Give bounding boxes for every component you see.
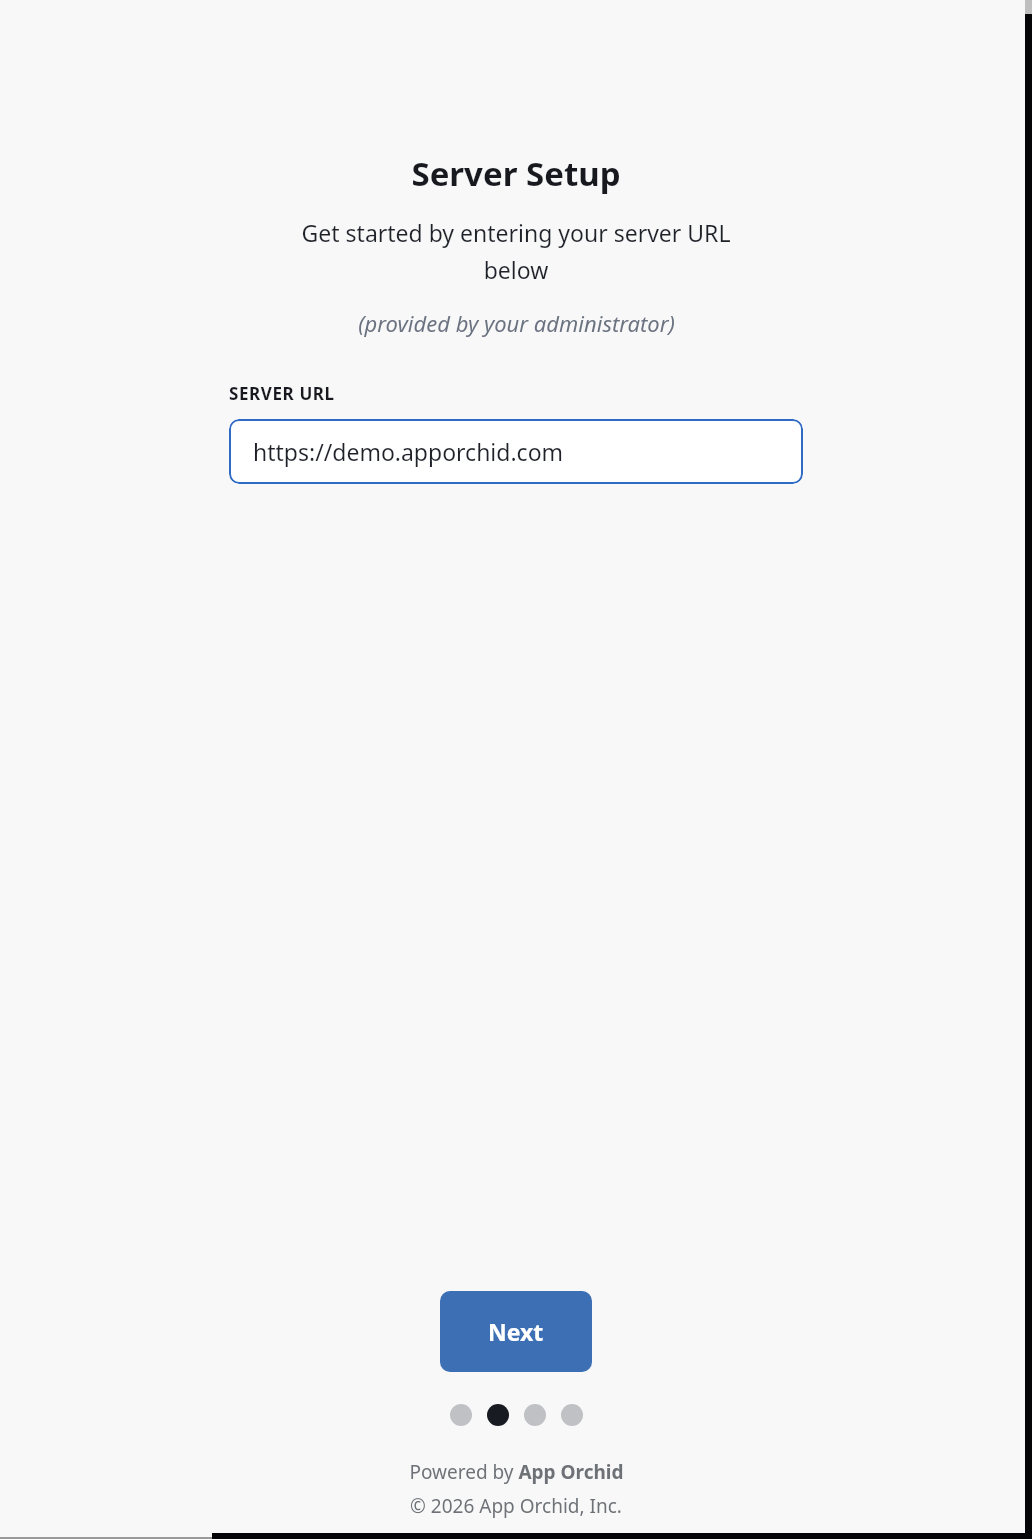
button[interactable]: https://demo.apporchid.com — [229, 419, 803, 484]
button[interactable]: Page 3 — [524, 1404, 546, 1426]
button[interactable]: Next — [440, 1291, 592, 1372]
staticText: Powered by App Orchid — [409, 1459, 624, 1485]
button[interactable]: Page 2 — [487, 1404, 509, 1426]
staticText: https://demo.apporchid.com — [253, 436, 564, 467]
button[interactable]: Page 4 — [561, 1404, 583, 1426]
staticText: Next — [488, 1316, 544, 1347]
staticText: (provided by your administrator) — [358, 308, 675, 338]
staticText: SERVER URL — [229, 382, 335, 405]
staticText: Get started by entering your server URL … — [276, 217, 756, 286]
staticText: Server Setup — [411, 151, 621, 196]
staticText: © 2026 App Orchid, Inc. — [410, 1493, 622, 1519]
button[interactable]: Page 1 — [450, 1404, 472, 1426]
